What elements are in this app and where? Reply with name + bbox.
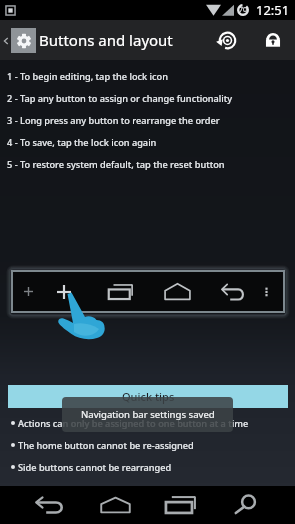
- button[interactable]: Navigation button: [162, 270, 192, 313]
- button[interactable]: Navigation button: [251, 270, 281, 313]
- staticText: Side buttons cannot be rearranged: [18, 461, 172, 474]
- staticText: The home button cannot be re-assigned: [18, 439, 194, 452]
- button[interactable]: Navigation button: [13, 270, 43, 313]
- staticText: 1 - To begin editing, tap the lock icon: [7, 70, 168, 83]
- button[interactable]: Navigation button: [49, 270, 79, 313]
- button[interactable]: Navigate up: [0, 28, 36, 53]
- staticText: Navigation bar settings saved: [81, 408, 215, 421]
- staticText: 2 - Tap any button to assign or change f…: [7, 92, 233, 105]
- button[interactable]: Home: [96, 486, 134, 524]
- button[interactable]: Navigation button: [105, 270, 135, 313]
- staticText: 70: [239, 5, 248, 15]
- staticText: 5 - To restore system default, tap the r…: [7, 158, 225, 171]
- button[interactable]: Search: [226, 486, 264, 524]
- staticText: Actions can only be assigned to one butt…: [18, 417, 249, 430]
- button[interactable]: Lock: [253, 20, 293, 60]
- button[interactable]: Back: [30, 486, 68, 524]
- staticText: 3 - Long press any button to rearrange t…: [7, 114, 220, 127]
- staticText: 4 - To save, tap the lock icon again: [7, 136, 157, 149]
- button[interactable]: Navigation button: [217, 270, 247, 313]
- staticText: 12:51: [256, 1, 290, 19]
- button[interactable]: Reset: [207, 20, 247, 60]
- button[interactable]: Recents: [161, 486, 199, 524]
- staticText: Quick tips: [122, 389, 175, 404]
- staticText: Buttons and layout: [39, 30, 173, 50]
